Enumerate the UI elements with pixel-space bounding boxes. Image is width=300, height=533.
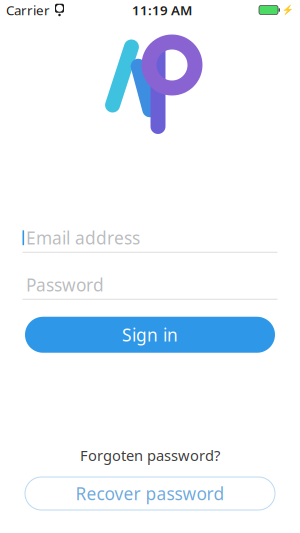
button[interactable]: Sign in xyxy=(25,317,275,353)
staticText: Carrier xyxy=(6,1,50,19)
button[interactable]: Recover password xyxy=(25,477,275,510)
button[interactable]: Email address xyxy=(22,227,277,253)
staticText: Recover password xyxy=(75,482,224,505)
staticText: 11:19 AM xyxy=(132,1,192,19)
button[interactable]: Password xyxy=(22,274,277,300)
staticText: Password xyxy=(26,273,104,296)
staticText: Sign in xyxy=(122,323,178,346)
staticText: ⚡ xyxy=(282,5,294,15)
staticText: Forgoten password? xyxy=(80,445,220,465)
staticText: Email address xyxy=(26,226,140,249)
